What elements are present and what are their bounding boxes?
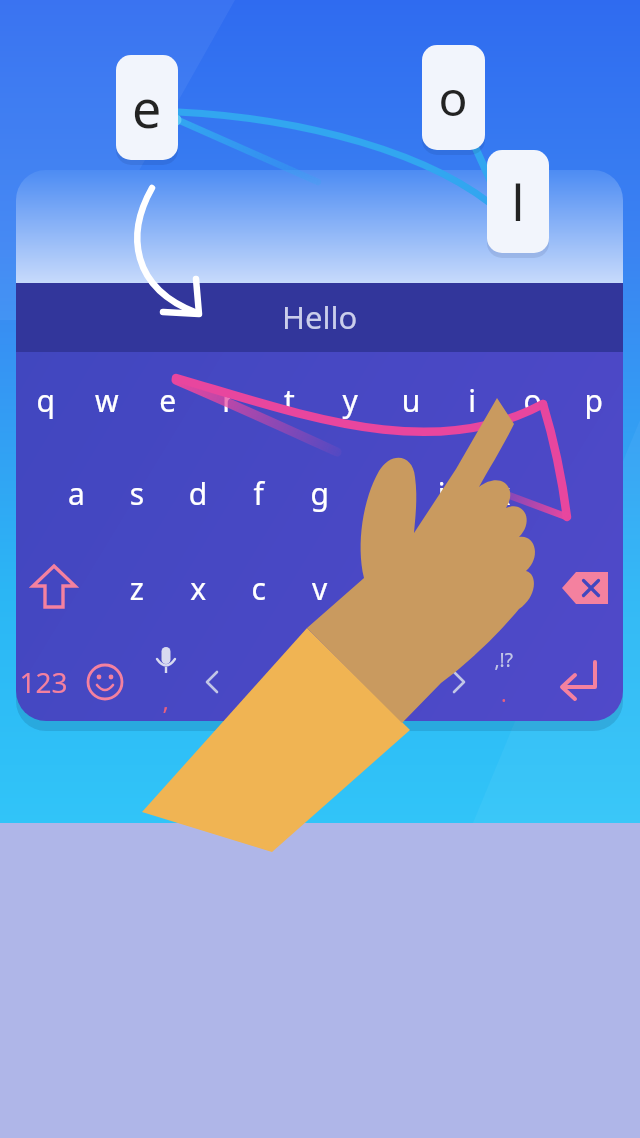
button[interactable]: Swipe typing illustration <box>0 0 640 1138</box>
